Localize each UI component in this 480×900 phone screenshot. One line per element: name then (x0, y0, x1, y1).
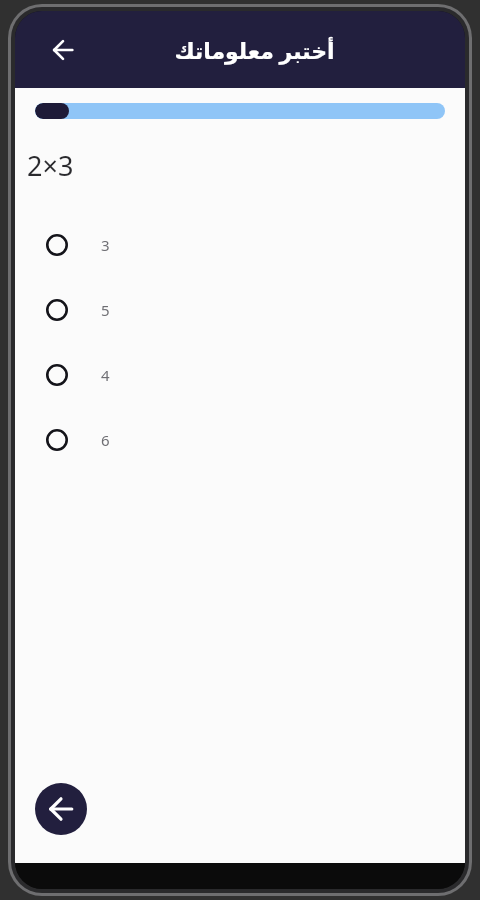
staticText: أختبر معلوماتك (174, 35, 335, 65)
staticText: 6 (101, 430, 110, 450)
button[interactable]: Previous (35, 783, 87, 835)
staticText: 2×3 (27, 147, 74, 184)
staticText: 5 (101, 300, 110, 320)
button[interactable]: 6 (15, 407, 465, 472)
button[interactable]: Back (39, 26, 87, 74)
button[interactable]: 4 (15, 342, 465, 407)
button[interactable]: 3 (15, 212, 465, 277)
staticText: 4 (101, 365, 110, 385)
button[interactable]: 5 (15, 277, 465, 342)
staticText: 3 (101, 235, 110, 255)
